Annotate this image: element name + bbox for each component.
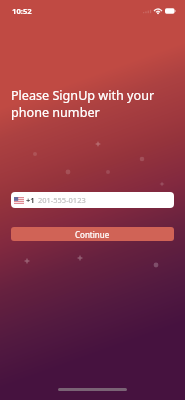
staticText: 10:52 [12, 6, 32, 16]
other: United States country flag [14, 197, 24, 204]
staticText: Please SignUp with your phone number [11, 87, 155, 121]
button[interactable]: Continue [11, 227, 174, 241]
button[interactable]: United States country flag [11, 192, 174, 208]
staticText: 201-555-0123 [38, 195, 86, 205]
other: Signal, Wi-Fi and battery status [143, 5, 177, 17]
staticText: +1 [26, 195, 35, 205]
staticText: Continue [75, 229, 110, 240]
